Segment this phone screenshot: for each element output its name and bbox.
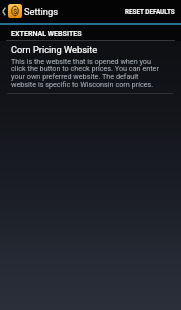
staticText: RESET DEFAULTS (125, 8, 175, 15)
button[interactable]: RESET DEFAULTS (119, 0, 181, 22)
button[interactable]: Corn Pricing Website (0, 41, 181, 95)
button[interactable]: Navigate up (0, 0, 24, 22)
staticText: EXTERNAL WEBSITES (11, 29, 82, 37)
staticText: This is the website that is opened when … (11, 57, 164, 89)
staticText: $ (13, 7, 18, 16)
staticText: Settings (24, 6, 58, 17)
staticText: Corn Pricing Website (11, 44, 98, 55)
